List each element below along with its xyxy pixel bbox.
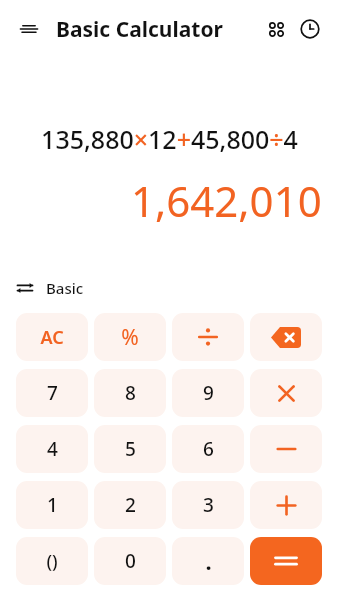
staticText: AC: [40, 325, 64, 350]
staticText: 3: [203, 492, 214, 518]
button[interactable]: Basic: [16, 278, 84, 298]
button[interactable]: 0: [94, 537, 166, 585]
button[interactable]: Minus: [250, 425, 322, 473]
button[interactable]: 3: [172, 481, 244, 529]
button[interactable]: Plus: [250, 481, 322, 529]
staticText: 1,642,010: [131, 172, 322, 229]
staticText: 1: [47, 492, 58, 518]
staticText: 9: [203, 380, 214, 406]
staticText: Basic Calculator: [56, 15, 223, 44]
button[interactable]: 6: [172, 425, 244, 473]
staticText: 8: [125, 380, 136, 406]
button[interactable]: (): [16, 537, 88, 585]
staticText: 135,880×12+45,800÷4: [41, 122, 298, 156]
button[interactable]: History: [296, 15, 324, 43]
button[interactable]: Backspace: [250, 313, 322, 361]
staticText: 7: [47, 380, 58, 406]
button[interactable]: 8: [94, 369, 166, 417]
button[interactable]: 5: [94, 425, 166, 473]
button[interactable]: .: [172, 537, 244, 585]
button[interactable]: 4: [16, 425, 88, 473]
button[interactable]: Menu: [14, 14, 44, 44]
staticText: 4: [47, 436, 58, 462]
staticText: Basic: [46, 278, 84, 298]
button[interactable]: Apps: [262, 15, 290, 43]
button[interactable]: Multiply: [250, 369, 322, 417]
button[interactable]: 9: [172, 369, 244, 417]
button[interactable]: Equals: [250, 537, 322, 585]
staticText: (): [46, 549, 58, 574]
staticText: .: [205, 546, 212, 576]
staticText: 0: [125, 548, 136, 574]
staticText: %: [121, 323, 139, 352]
staticText: 5: [125, 436, 136, 462]
button[interactable]: Divide: [172, 313, 244, 361]
staticText: 6: [203, 436, 214, 462]
button[interactable]: %: [94, 313, 166, 361]
button[interactable]: 1: [16, 481, 88, 529]
button[interactable]: 7: [16, 369, 88, 417]
button[interactable]: AC: [16, 313, 88, 361]
staticText: 2: [125, 492, 136, 518]
button[interactable]: 2: [94, 481, 166, 529]
